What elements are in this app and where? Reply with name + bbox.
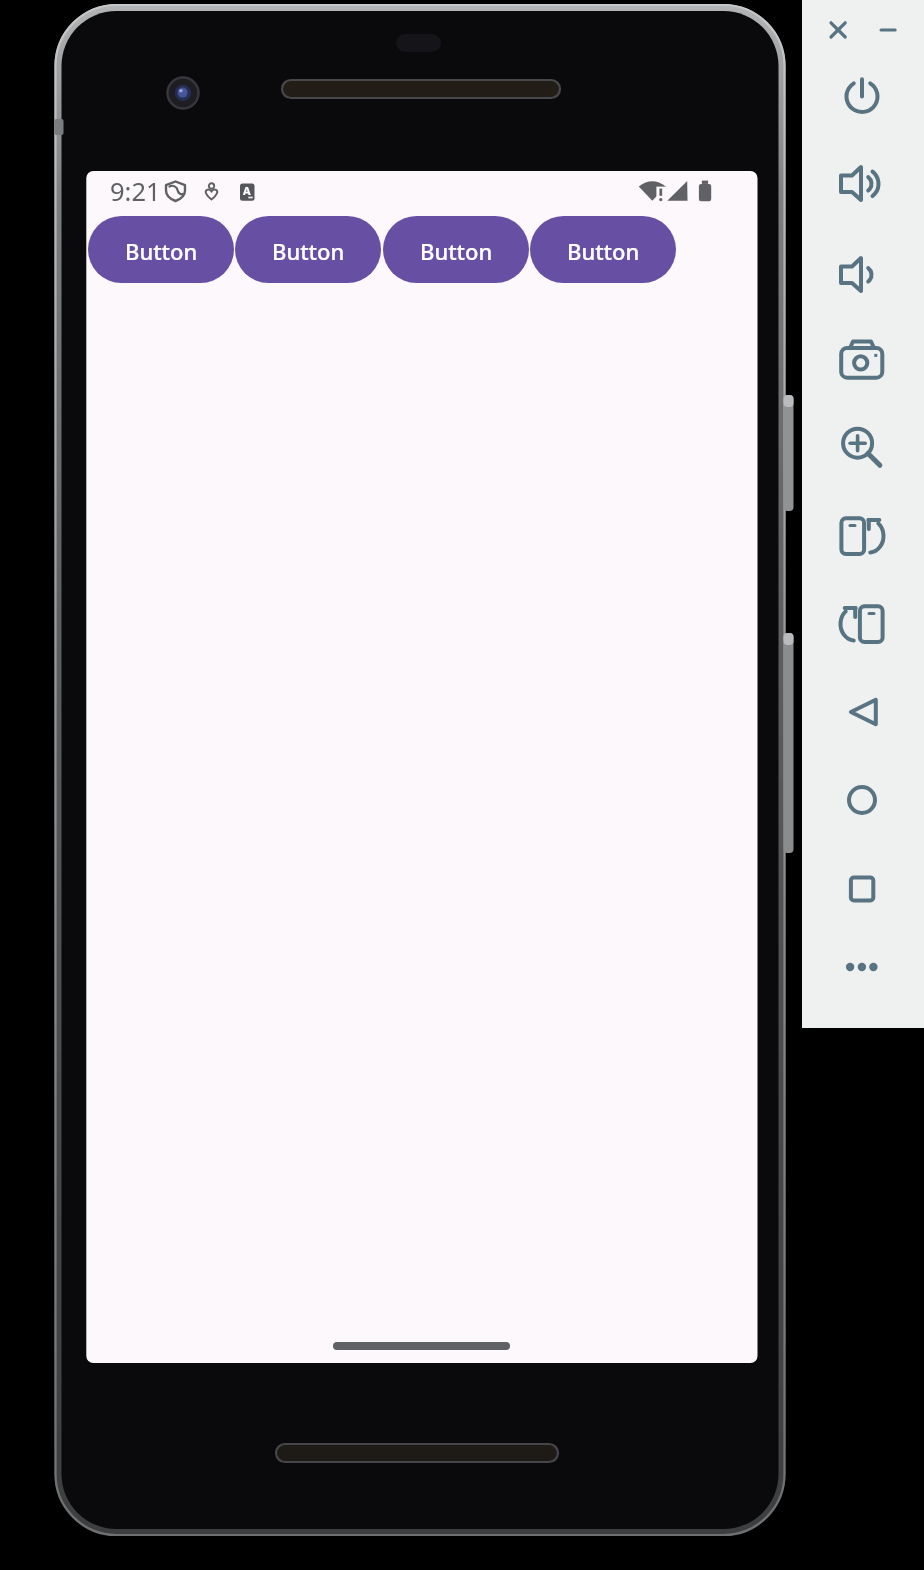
button[interactable] <box>874 16 902 44</box>
button[interactable] <box>838 419 886 467</box>
button[interactable] <box>838 600 886 648</box>
staticText: Button <box>567 236 640 266</box>
button[interactable]: Button <box>235 216 381 283</box>
button[interactable]: Button <box>88 216 234 283</box>
button[interactable] <box>838 865 886 913</box>
staticText: 9:21 <box>110 174 161 208</box>
button[interactable] <box>838 251 886 299</box>
button[interactable] <box>838 512 886 560</box>
staticText: Button <box>420 236 493 266</box>
staticText: A <box>243 183 251 198</box>
button[interactable]: Button <box>383 216 529 283</box>
button[interactable] <box>824 16 852 44</box>
staticText: Button <box>125 236 198 266</box>
button[interactable] <box>838 776 886 824</box>
button[interactable] <box>838 72 886 120</box>
button[interactable] <box>838 338 886 386</box>
button[interactable] <box>838 688 886 736</box>
button[interactable] <box>838 160 886 208</box>
button[interactable] <box>838 943 886 991</box>
staticText: Button <box>272 236 345 266</box>
button[interactable]: Button <box>530 216 676 283</box>
